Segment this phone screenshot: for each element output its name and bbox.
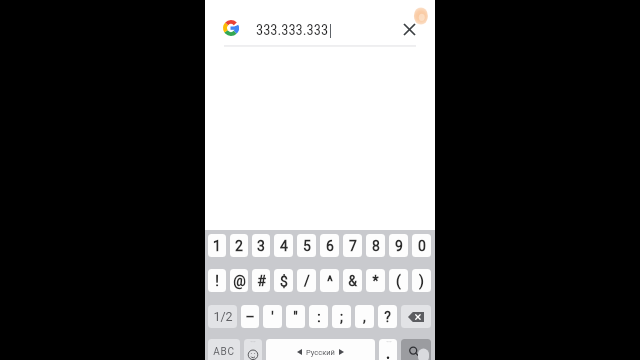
staticText: $: [280, 273, 288, 289]
staticText: &: [348, 273, 357, 289]
button[interactable]: 4: [274, 234, 293, 257]
button[interactable]: ^: [320, 269, 339, 292]
button[interactable]: Clear: [398, 18, 420, 40]
button[interactable]: ': [263, 305, 282, 328]
button[interactable]: &: [343, 269, 362, 292]
staticText: ;: [340, 309, 343, 325]
button[interactable]: 3: [252, 234, 270, 257]
button[interactable]: 9: [389, 234, 408, 257]
button[interactable]: ": [286, 305, 305, 328]
staticText: ,: [363, 309, 366, 325]
button[interactable]: ?: [378, 305, 397, 328]
button[interactable]: #: [252, 269, 270, 292]
staticText: 3: [257, 238, 265, 254]
button[interactable]: Search: [401, 339, 431, 360]
other: Backspace: [401, 305, 431, 328]
staticText: *: [372, 273, 379, 289]
button[interactable]: –: [241, 305, 259, 328]
button[interactable]: Backspace: [401, 305, 431, 328]
staticText: @: [233, 273, 246, 289]
button[interactable]: 0: [412, 234, 431, 257]
staticText: 6: [326, 238, 334, 254]
button[interactable]: Google: [223, 20, 239, 36]
staticText: !: [215, 273, 219, 289]
button[interactable]: $: [274, 269, 293, 292]
button[interactable]: 1: [208, 234, 226, 257]
staticText: –: [245, 309, 255, 325]
staticText: (: [396, 273, 401, 289]
staticText: 5: [303, 238, 311, 254]
staticText: ': [271, 309, 274, 325]
button[interactable]: 1/2: [208, 305, 237, 328]
other: Period: [379, 339, 397, 360]
button[interactable]: *: [366, 269, 385, 292]
button[interactable]: 7: [343, 234, 362, 257]
button[interactable]: /: [297, 269, 316, 292]
staticText: 0: [418, 238, 426, 254]
button[interactable]: (: [389, 269, 408, 292]
staticText: Русский: [306, 348, 335, 357]
button[interactable]: 6: [320, 234, 339, 257]
staticText: #: [257, 273, 266, 289]
staticText: 9: [395, 238, 403, 254]
staticText: ^: [327, 273, 333, 289]
staticText: 1: [213, 238, 221, 254]
other: Emoji: [244, 339, 262, 360]
button[interactable]: 5: [297, 234, 316, 257]
other: Search: [401, 339, 431, 360]
button[interactable]: 2: [230, 234, 248, 257]
staticText: 333.333.333: [256, 22, 329, 39]
button[interactable]: Emoji: [244, 339, 262, 360]
button[interactable]: !: [208, 269, 226, 292]
staticText: :: [317, 309, 321, 325]
staticText: /: [304, 273, 310, 289]
button[interactable]: 8: [366, 234, 385, 257]
staticText: 8: [372, 238, 380, 254]
staticText: 7: [349, 238, 357, 254]
button[interactable]: ;: [332, 305, 351, 328]
button[interactable]: :: [309, 305, 328, 328]
staticText: ": [293, 309, 298, 325]
button[interactable]: ,: [355, 305, 374, 328]
staticText: ?: [384, 309, 391, 325]
button[interactable]: Period: [379, 339, 397, 360]
staticText: 2: [235, 238, 243, 254]
staticText: ABC: [213, 346, 235, 358]
button[interactable]: @: [230, 269, 248, 292]
button[interactable]: ABC: [208, 339, 240, 360]
button[interactable]: Русский: [266, 339, 375, 360]
staticText: 4: [280, 238, 288, 254]
button[interactable]: ): [412, 269, 431, 292]
staticText: 1/2: [213, 309, 233, 324]
staticText: ): [419, 273, 424, 289]
